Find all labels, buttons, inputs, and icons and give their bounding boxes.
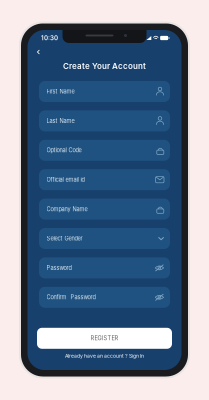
button[interactable]: Password [39, 257, 170, 278]
staticText: Official email id [46, 176, 84, 183]
staticText: Optional Code [46, 147, 81, 154]
button[interactable]: First Name [39, 81, 170, 102]
staticText: Last Name [46, 117, 74, 124]
staticText: First Name [46, 88, 74, 95]
staticText: Company Name [46, 206, 87, 212]
button[interactable]: Back [34, 47, 43, 57]
staticText: 10:30 [41, 34, 58, 42]
button[interactable]: Already have an account ? Sign In [65, 349, 144, 362]
button[interactable]: REGISTER [37, 328, 172, 349]
button[interactable]: Last Name [39, 110, 170, 131]
button[interactable]: Official email id [39, 169, 170, 190]
staticText: Already have an account ? Sign In [65, 353, 144, 359]
button[interactable]: Optional Code [39, 140, 170, 161]
staticText: REGISTER [90, 335, 118, 342]
button[interactable]: Company Name [39, 199, 170, 220]
staticText: Confirm Password [46, 294, 95, 301]
button[interactable]: Confirm Password [39, 287, 170, 308]
staticText: Password [46, 264, 71, 271]
button[interactable]: Select Gender [39, 228, 170, 249]
staticText: Create Your Account [63, 61, 146, 71]
staticText: Select Gender [46, 235, 82, 242]
